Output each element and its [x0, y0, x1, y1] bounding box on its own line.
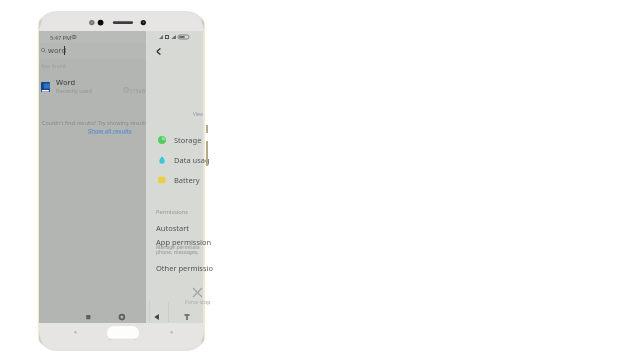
button[interactable]: Other permissio	[146, 261, 203, 277]
staticText: Recently used	[56, 87, 92, 94]
staticText: App permission	[156, 237, 212, 247]
button[interactable]: word	[39, 43, 203, 59]
button[interactable]: Battery	[146, 171, 203, 189]
button[interactable]: Home	[107, 326, 139, 340]
staticText: App found	[41, 63, 66, 70]
staticText: Word	[56, 77, 76, 87]
staticText: 5:47 PM	[50, 34, 72, 42]
staticText: Data usag	[174, 155, 210, 165]
button[interactable]: Storage	[146, 131, 203, 149]
button[interactable]: Autostart	[146, 219, 203, 235]
staticText: phone, messages,	[156, 249, 200, 256]
button[interactable]: Show all results	[88, 127, 132, 135]
staticText: Battery	[174, 175, 200, 185]
staticText: Couldn't find results? Try showing resul…	[42, 119, 151, 126]
staticText: Force stop	[185, 298, 211, 305]
staticText: word	[48, 45, 66, 55]
button[interactable]: Close	[189, 284, 205, 300]
staticText: Permissions	[156, 208, 188, 216]
staticText: Autostart	[156, 223, 189, 233]
staticText: Manage permissio	[156, 244, 200, 251]
staticText: Other permissio	[156, 263, 213, 273]
staticText: 315kB	[129, 87, 145, 94]
button[interactable]: Word	[39, 75, 203, 99]
button[interactable]: App permission	[146, 235, 203, 258]
button[interactable]: Back	[151, 44, 165, 58]
staticText: Storage	[174, 135, 202, 145]
button[interactable]: Data usag	[146, 151, 203, 169]
staticText: View	[193, 111, 203, 117]
